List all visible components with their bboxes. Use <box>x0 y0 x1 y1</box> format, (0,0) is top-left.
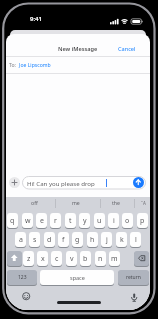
staticText: space <box>70 274 85 281</box>
button[interactable]: off <box>23 197 45 208</box>
staticText: j <box>106 235 108 245</box>
staticText: u <box>97 216 102 226</box>
button[interactable]: n <box>95 251 106 266</box>
button[interactable]: j <box>101 232 112 247</box>
button[interactable] <box>6 57 150 73</box>
button[interactable] <box>7 251 22 266</box>
staticText: b <box>83 254 88 264</box>
staticText: To: <box>9 62 16 69</box>
button[interactable] <box>134 251 149 266</box>
button[interactable]: i <box>108 213 119 228</box>
button[interactable]: 123 <box>7 270 37 285</box>
staticText: o <box>125 216 130 226</box>
staticText: off <box>31 199 38 206</box>
button[interactable]: c <box>51 251 62 266</box>
staticText: c <box>55 254 59 264</box>
staticText: g <box>75 235 80 245</box>
staticText: s <box>33 235 37 245</box>
staticText: d <box>47 235 52 245</box>
button[interactable] <box>130 293 138 303</box>
staticText: i <box>113 216 115 226</box>
staticText: q <box>10 216 15 226</box>
button[interactable]: t <box>65 213 76 228</box>
button[interactable]: s <box>29 232 40 247</box>
staticText: ˇA <box>141 200 146 206</box>
button[interactable]: r <box>50 213 61 228</box>
button[interactable] <box>22 176 146 190</box>
staticText: return <box>126 274 141 281</box>
staticText: New iMessage <box>58 45 98 53</box>
button[interactable]: g <box>72 232 83 247</box>
staticText: m <box>111 254 118 264</box>
staticText: Cancel <box>118 45 136 53</box>
staticText: me <box>72 199 80 206</box>
staticText: 9:41 <box>30 15 42 23</box>
staticText: f <box>62 235 65 245</box>
button[interactable]: m <box>109 251 120 266</box>
staticText: w <box>25 216 31 226</box>
button[interactable]: a <box>15 232 26 247</box>
staticText: t <box>69 216 72 226</box>
staticText: y <box>83 216 87 226</box>
button[interactable]: h <box>87 232 98 247</box>
button[interactable]: d <box>44 232 55 247</box>
button[interactable]: x <box>37 251 48 266</box>
button[interactable]: the <box>105 197 127 208</box>
staticText: h <box>90 235 95 245</box>
staticText: Hi! Can you please drop <box>27 179 95 187</box>
button[interactable]: o <box>122 213 133 228</box>
button[interactable] <box>133 177 144 188</box>
staticText: z <box>27 254 31 264</box>
staticText: k <box>120 235 124 245</box>
button[interactable]: Cancel <box>104 42 136 55</box>
button[interactable]: f <box>58 232 69 247</box>
staticText: v <box>70 254 74 264</box>
button[interactable]: b <box>80 251 91 266</box>
button[interactable]: y <box>79 213 90 228</box>
button[interactable]: u <box>94 213 105 228</box>
staticText: p <box>140 216 145 226</box>
button[interactable]: q <box>7 213 18 228</box>
button[interactable]: me <box>65 197 87 208</box>
staticText: n <box>98 254 103 264</box>
button[interactable]: p <box>137 213 148 228</box>
button[interactable]: w <box>22 213 33 228</box>
staticText: l <box>135 235 137 245</box>
button[interactable] <box>9 177 20 188</box>
button[interactable]: k <box>116 232 127 247</box>
button[interactable]: e <box>36 213 47 228</box>
staticText: 123 <box>18 274 27 281</box>
button[interactable]: v <box>66 251 77 266</box>
staticText: e <box>40 216 44 226</box>
button[interactable] <box>22 292 30 300</box>
staticText: x <box>41 254 45 264</box>
staticText: the <box>112 199 121 206</box>
button[interactable]: l <box>130 232 141 247</box>
staticText: r <box>54 216 57 226</box>
button[interactable]: space <box>40 270 114 285</box>
button[interactable]: return <box>118 270 149 285</box>
staticText: Joe Lipscomb <box>19 62 51 69</box>
button[interactable]: z <box>23 251 34 266</box>
staticText: a <box>19 235 23 245</box>
